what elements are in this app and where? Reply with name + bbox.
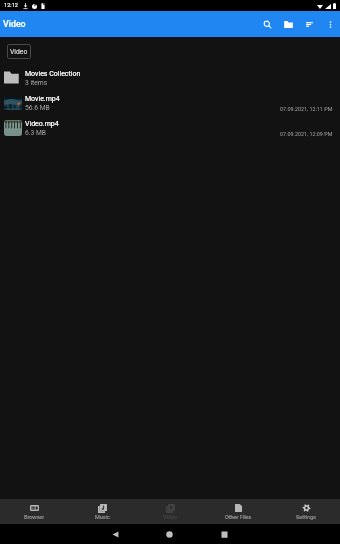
staticText: 56.6 MB <box>25 104 50 112</box>
button[interactable]: Video <box>136 499 204 524</box>
other: Home <box>166 531 173 538</box>
other: Back <box>112 531 119 538</box>
button[interactable]: Sort <box>299 11 320 37</box>
staticText: 07.09.2021, 12:11 PM <box>280 106 333 112</box>
button[interactable]: Search <box>257 11 278 37</box>
staticText: Music <box>95 514 110 520</box>
staticText: Settings <box>296 514 317 520</box>
staticText: 3 items <box>25 79 48 87</box>
staticText: Movie.mp4 <box>25 95 60 103</box>
staticText: Movies Collection <box>25 70 81 78</box>
staticText: Video <box>10 48 28 56</box>
staticText: 07.09.2021, 12:09 PM <box>280 131 333 137</box>
other: Recents <box>221 531 228 538</box>
staticText: Video <box>163 514 177 520</box>
button[interactable]: Other Files <box>204 499 272 524</box>
button[interactable]: Video <box>7 44 31 59</box>
button[interactable]: More options <box>320 11 340 37</box>
button[interactable]: Movies Collection <box>0 65 340 90</box>
button[interactable]: Folder <box>278 11 299 37</box>
staticText: 12:12 <box>4 2 18 9</box>
button[interactable]: Music <box>68 499 136 524</box>
button[interactable]: Movie.mp4 <box>0 90 340 115</box>
staticText: Browser <box>24 514 45 520</box>
button[interactable]: Settings <box>272 499 340 524</box>
staticText: Video <box>3 19 26 29</box>
staticText: 6.3 MB <box>25 129 46 137</box>
button[interactable]: Video.mp4 <box>0 115 340 140</box>
button[interactable]: Browser <box>0 499 68 524</box>
staticText: Other Files <box>225 514 252 520</box>
staticText: Video.mp4 <box>25 120 59 128</box>
